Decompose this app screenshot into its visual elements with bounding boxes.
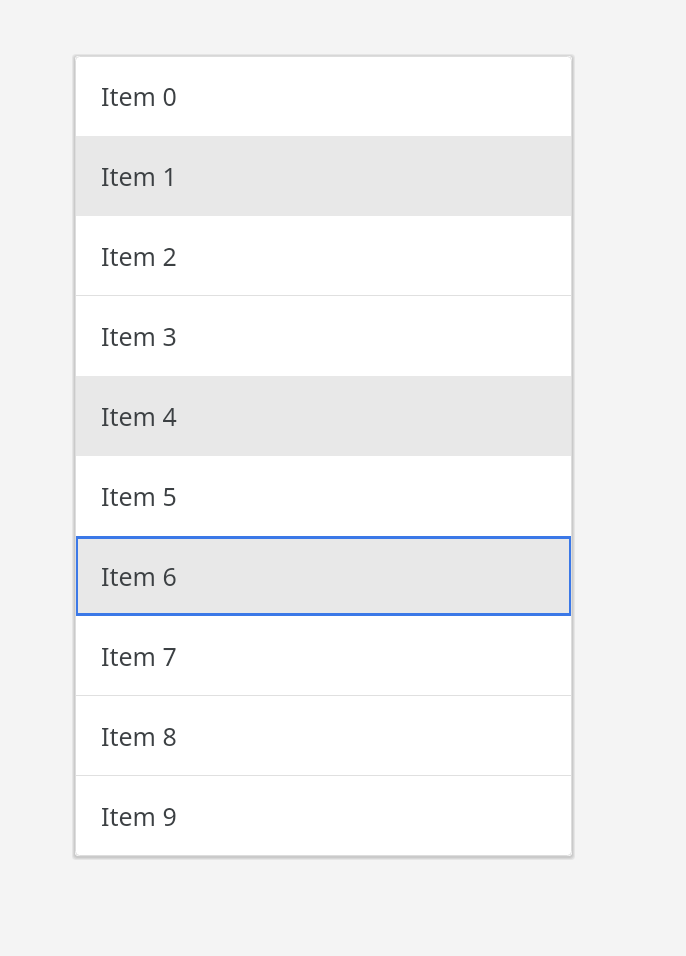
button[interactable]: Item 7 — [75, 616, 572, 696]
staticText: Item 3 — [101, 319, 177, 353]
button[interactable]: Item 1 — [75, 136, 572, 216]
button[interactable]: Item 9 — [75, 776, 572, 856]
staticText: Item 1 — [101, 159, 177, 193]
button[interactable]: Item 5 — [75, 456, 572, 536]
button[interactable]: Item 4 — [75, 376, 572, 456]
staticText: Item 5 — [101, 479, 177, 513]
staticText: Item 6 — [101, 559, 177, 593]
staticText: Item 4 — [101, 399, 177, 433]
button[interactable]: Item 0 — [75, 56, 572, 136]
staticText: Item 0 — [101, 79, 177, 113]
button[interactable]: Item 2 — [75, 216, 572, 296]
staticText: Item 7 — [101, 639, 177, 673]
button[interactable]: Item 6 — [75, 536, 572, 616]
staticText: Item 8 — [101, 719, 177, 753]
staticText: Item 2 — [101, 239, 177, 273]
staticText: Item 9 — [101, 799, 177, 833]
button[interactable]: Item 8 — [75, 696, 572, 776]
button[interactable]: Item 3 — [75, 296, 572, 376]
